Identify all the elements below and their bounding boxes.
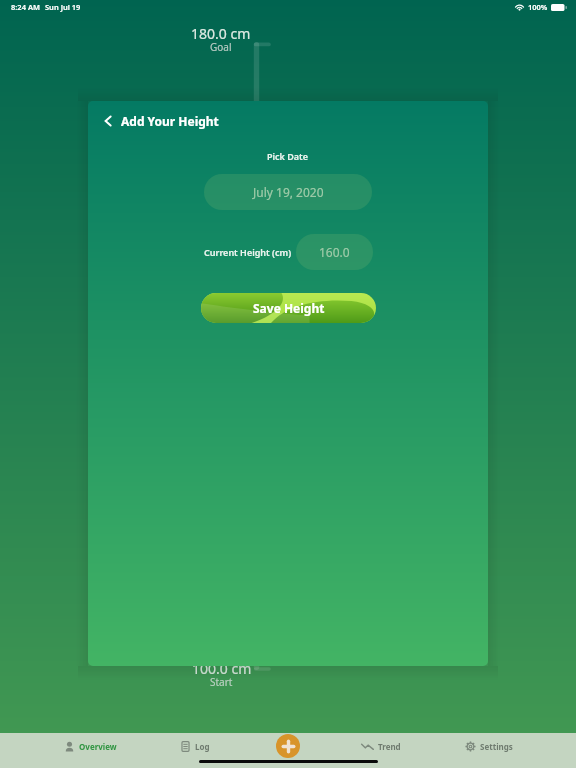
staticText: Goal <box>210 40 232 54</box>
button[interactable]: Overview <box>64 735 117 757</box>
staticText: 8:24 AM <box>11 2 40 12</box>
button[interactable]: July 19, 2020 <box>204 174 372 210</box>
button[interactable]: Back <box>99 112 117 130</box>
staticText: 160.0 <box>319 244 350 260</box>
staticText: Start <box>210 675 233 689</box>
button[interactable]: Log <box>180 735 210 757</box>
staticText: Add Your Height <box>121 113 219 129</box>
button[interactable]: 160.0 <box>296 234 373 270</box>
staticText: Current Height (cm) <box>204 246 292 258</box>
staticText: Pick Date <box>267 150 309 162</box>
staticText: Settings <box>480 741 513 752</box>
staticText: Overview <box>79 741 117 752</box>
staticText: July 19, 2020 <box>253 184 324 200</box>
button[interactable]: Settings <box>465 735 513 757</box>
staticText: Save Height <box>253 300 325 316</box>
staticText: 100% <box>528 2 548 12</box>
button[interactable]: Trend <box>361 735 401 757</box>
staticText: Sun Jul 19 <box>45 2 81 12</box>
button[interactable]: Add entry <box>276 734 300 758</box>
staticText: 100.0 cm <box>192 659 252 678</box>
staticText: Log <box>195 741 210 752</box>
staticText: 180.0 cm <box>191 24 251 43</box>
staticText: Trend <box>378 741 401 752</box>
button[interactable]: Save Height <box>201 293 376 323</box>
